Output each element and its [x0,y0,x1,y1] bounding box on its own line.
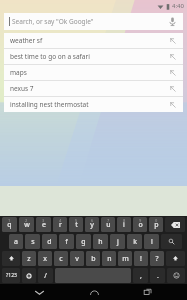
staticText: 9 [139,218,142,223]
button[interactable]: r [53,217,67,232]
button[interactable]: m [118,251,132,266]
staticText: nexus 7 [10,84,169,93]
button[interactable]: Shift [2,251,20,266]
button[interactable]: Shift [166,251,185,266]
staticText: m [122,254,129,264]
staticText: , [140,271,142,281]
button[interactable]: x [38,251,52,266]
staticText: ! [140,254,142,264]
button[interactable]: / [38,268,53,283]
staticText: . [157,271,159,281]
button[interactable]: j [110,234,125,249]
staticText: x [43,254,47,264]
button[interactable]: maps [4,65,183,80]
button[interactable]: Search [161,234,182,249]
button[interactable]: , [133,268,148,283]
staticText: t [75,220,78,230]
button[interactable]: Emoji [167,268,185,283]
button[interactable]: y [85,217,99,232]
staticText: a [14,237,18,247]
button[interactable]: s [25,234,40,249]
button[interactable]: w [19,217,34,232]
button[interactable]: a [9,234,23,249]
staticText: n [107,254,112,264]
staticText: / [44,271,47,281]
button[interactable]: best time to go on a safari [4,49,183,64]
button[interactable]: t [69,217,83,232]
button[interactable]: k [127,234,142,249]
button[interactable]: p [149,217,163,232]
button[interactable]: weather sf [4,33,183,48]
button[interactable]: q [2,217,17,232]
staticText: e [42,220,46,230]
staticText: p [154,220,159,230]
button[interactable]: g [76,234,91,249]
staticText: j [117,237,119,247]
staticText: 4:40 [172,2,184,10]
button[interactable]: d [42,234,57,249]
button[interactable]: n [102,251,116,266]
button[interactable]: f [59,234,74,249]
button[interactable]: l [144,234,159,249]
button[interactable]: Settings [22,268,36,283]
button[interactable]: v [70,251,84,266]
staticText: g [81,237,86,247]
staticText: 2 [25,218,28,223]
staticText: s [31,237,35,247]
button[interactable]: ! [134,251,148,266]
staticText: 5 [75,218,78,223]
staticText: 4 [59,218,62,223]
button[interactable]: ? [150,251,164,266]
staticText: 0 [155,218,158,223]
button[interactable]: Search, or say "Ok Google" [4,13,183,30]
staticText: installing nest thermostat [10,100,169,109]
button[interactable]: b [86,251,100,266]
staticText: best time to go on a safari [10,52,169,61]
staticText: 1 [8,218,11,223]
staticText: 6 [91,218,94,223]
staticText: maps [10,68,169,77]
button[interactable]: e [36,217,51,232]
button[interactable]: h [93,234,108,249]
button[interactable]: o [133,217,147,232]
staticText: v [75,254,79,264]
staticText: o [138,220,143,230]
button[interactable]: installing nest thermostat [4,97,183,112]
staticText: i [123,220,125,230]
staticText: c [59,254,63,264]
staticText: y [90,220,94,230]
other: Voice search [167,16,178,27]
staticText: r [59,220,62,230]
staticText: l [151,237,153,247]
staticText: k [133,237,137,247]
staticText: z [27,254,31,264]
staticText: weather sf [10,36,169,45]
staticText: 7 [107,218,110,223]
staticText: u [106,220,111,230]
other: Insert suggestion [169,101,177,109]
other: Insert suggestion [169,37,177,45]
button[interactable]: Home [79,284,109,300]
button[interactable]: ?123 [2,268,20,283]
button[interactable]: z [22,251,36,266]
staticText: q [7,220,12,230]
staticText: ? [155,254,159,264]
button[interactable]: Back [24,284,54,300]
other: Insert suggestion [169,69,177,77]
button[interactable]: i [117,217,131,232]
button[interactable]: nexus 7 [4,81,183,96]
button[interactable]: . [150,268,165,283]
staticText: 3 [42,218,45,223]
staticText: h [98,237,103,247]
button[interactable]: Recent apps [133,284,163,300]
button[interactable]: u [101,217,115,232]
other: Insert suggestion [169,85,177,93]
button[interactable]: c [54,251,68,266]
staticText: 8 [123,218,126,223]
staticText: d [47,237,52,247]
other: Insert suggestion [169,53,177,61]
staticText: ?123 [6,272,17,279]
staticText: w [24,220,30,230]
button[interactable]: Delete [165,217,185,232]
